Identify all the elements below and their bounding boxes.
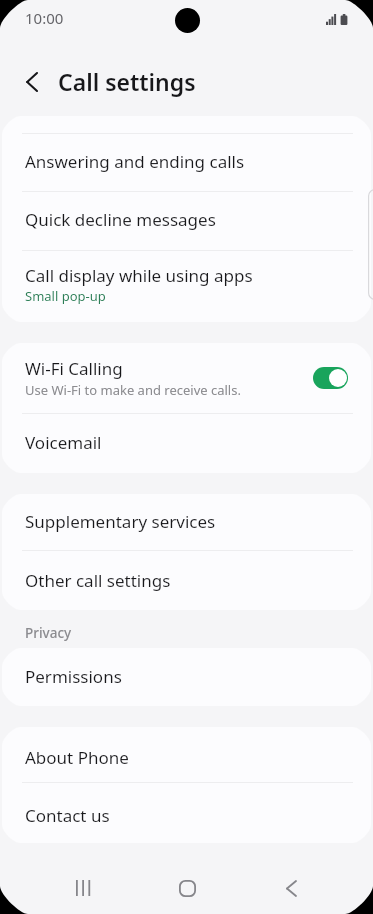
staticText: Contact us (25, 804, 110, 827)
staticText: Call settings (58, 66, 196, 97)
staticText: Answering and ending calls (25, 150, 245, 173)
button[interactable]: Recent apps (53, 868, 112, 908)
button[interactable]: Home (158, 868, 217, 908)
button[interactable] (2, 550, 371, 610)
staticText: Use Wi-Fi to make and receive calls. (25, 381, 241, 399)
button[interactable] (2, 494, 371, 550)
button[interactable] (2, 250, 371, 321)
button[interactable]: Wi-Fi Calling toggle (313, 367, 348, 389)
staticText: Permissions (25, 665, 122, 688)
button[interactable] (2, 133, 371, 191)
staticText: Small pop-up (25, 287, 106, 305)
staticText: 10:00 (25, 8, 64, 28)
button[interactable] (2, 413, 371, 471)
button[interactable]: Wi-Fi Calling (2, 343, 371, 414)
staticText: Other call settings (25, 569, 171, 592)
button[interactable]: Back (14, 64, 50, 100)
button[interactable]: Back (262, 868, 321, 908)
staticText: Supplementary services (25, 510, 216, 533)
staticText: About Phone (25, 746, 129, 769)
staticText: Quick decline messages (25, 208, 216, 231)
staticText: Privacy (25, 624, 72, 642)
button[interactable] (2, 727, 371, 782)
staticText: Voicemail (25, 431, 102, 454)
staticText: Wi-Fi Calling (25, 357, 123, 380)
button[interactable] (2, 191, 371, 250)
button[interactable] (2, 782, 371, 843)
staticText: Call display while using apps (25, 264, 253, 287)
button[interactable] (2, 648, 371, 706)
